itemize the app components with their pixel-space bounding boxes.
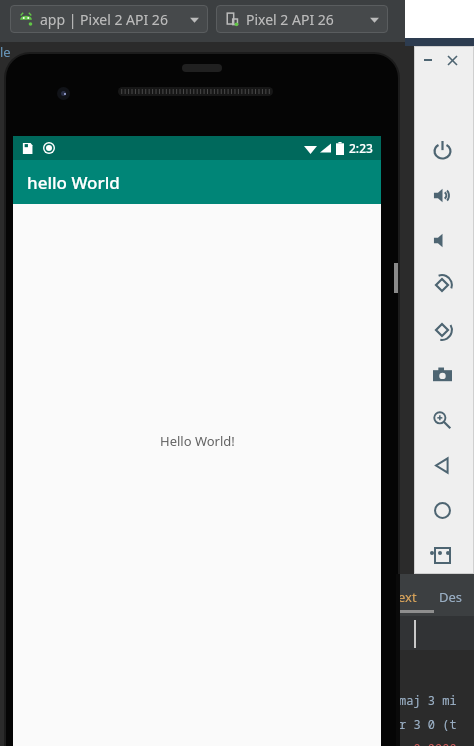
button[interactable]: Zoom — [420, 398, 464, 442]
staticText: le — [0, 43, 11, 61]
staticText: r 3 0 (t — [399, 716, 457, 732]
staticText: m 0x0000 — [399, 740, 457, 746]
button[interactable]: Volume down — [420, 218, 464, 262]
button[interactable]: app | Pixel 2 API 26 — [10, 5, 208, 33]
staticText: Pixel 2 API 26 — [246, 10, 334, 29]
staticText: app | Pixel 2 API 26 — [40, 10, 168, 29]
button[interactable]: Volume up — [420, 173, 464, 217]
button[interactable]: Close — [442, 50, 462, 70]
button[interactable]: Power — [420, 128, 464, 172]
button[interactable]: Rotate right — [420, 308, 464, 352]
staticText: hello World — [27, 171, 120, 194]
button[interactable]: More — [420, 533, 460, 573]
button[interactable]: Home — [420, 488, 464, 532]
button[interactable]: Overview — [420, 533, 464, 577]
staticText: ext — [398, 588, 417, 606]
button[interactable]: Pixel 2 API 26 — [216, 5, 388, 33]
button[interactable]: Screenshot — [420, 353, 464, 397]
staticText: Des — [439, 588, 463, 606]
staticText: maj 3 mi — [399, 692, 457, 708]
button[interactable]: Rotate left — [420, 263, 464, 307]
staticText: 2:23 — [349, 140, 373, 156]
button[interactable]: Back — [420, 443, 464, 487]
button[interactable]: Minimize — [418, 50, 438, 70]
staticText: Hello World! — [160, 432, 235, 450]
button[interactable]: hello World — [13, 160, 381, 204]
